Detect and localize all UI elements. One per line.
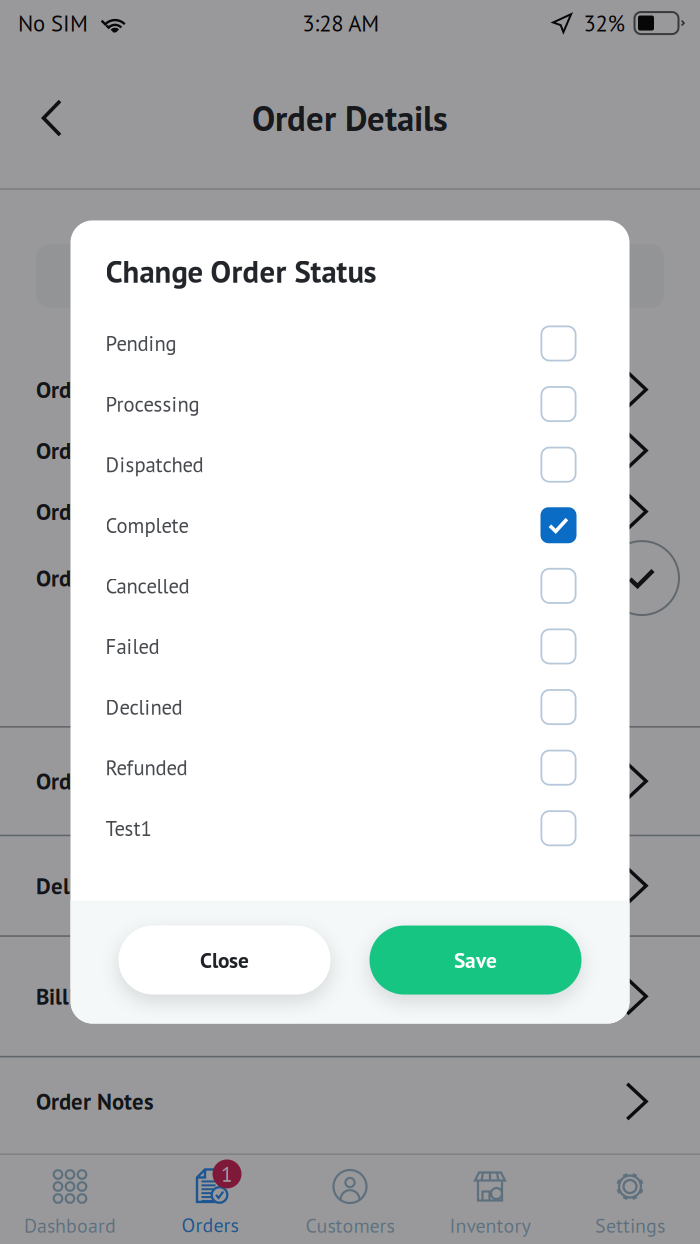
staticText: Dispatched [105, 451, 203, 478]
staticText: 32% [583, 8, 625, 38]
button[interactable]: Refunded [70, 737, 629, 798]
staticText: Settings [595, 1212, 665, 1238]
button[interactable]: Declined [70, 677, 629, 737]
button[interactable]: Order Date [0, 420, 700, 481]
staticText: Close [200, 946, 249, 974]
button[interactable]: Dispatched [70, 434, 629, 495]
staticText: Test1 [105, 815, 151, 842]
button[interactable]: Complete [70, 495, 629, 555]
staticText: Declined [105, 694, 182, 720]
button[interactable]: Order Notes [0, 1057, 700, 1145]
button[interactable]: Back [21, 86, 83, 150]
staticText: Order Items [36, 766, 151, 796]
button[interactable]: Delivery Address [0, 836, 700, 935]
staticText: Change Order Status [105, 251, 376, 291]
button[interactable]: Failed [70, 616, 629, 677]
staticText: Order Status [36, 563, 158, 593]
button[interactable]: Billing Address [0, 937, 700, 1056]
button[interactable]: Order ID [0, 359, 700, 420]
staticText: Customers [305, 1212, 394, 1238]
staticText: Dashboard [24, 1212, 116, 1238]
staticText: Failed [105, 633, 159, 660]
staticText: Order Notes [36, 1087, 154, 1116]
button[interactable]: Processing [70, 374, 629, 434]
staticText: Order ID [36, 375, 118, 404]
staticText: Delivery Address [36, 871, 200, 900]
staticText: Order Date [36, 436, 143, 465]
button[interactable]: Test1 [70, 798, 629, 858]
button[interactable]: Save [369, 925, 581, 994]
button[interactable]: Dashboard [0, 1155, 140, 1244]
staticText: Orders [181, 1212, 238, 1238]
staticText: Billing Address [36, 982, 182, 1011]
staticText: Refunded [105, 754, 187, 781]
button[interactable]: Order Items [0, 728, 700, 835]
staticText: Processing [105, 391, 199, 417]
staticText: 3:28 AM [302, 8, 379, 38]
button[interactable]: Inventory [420, 1155, 560, 1244]
staticText: Cancelled [105, 572, 189, 599]
staticText: Order Total [36, 497, 144, 526]
staticText: Pending [105, 330, 176, 357]
button[interactable]: Settings [560, 1155, 700, 1244]
staticText: 1 [221, 1160, 233, 1188]
staticText: Order Details [252, 96, 448, 140]
button[interactable]: Pending [70, 313, 629, 374]
button[interactable]: Cancelled [70, 555, 629, 616]
staticText: No SIM [18, 8, 88, 38]
button[interactable]: Customers [280, 1155, 420, 1244]
staticText: Complete [105, 512, 188, 539]
button[interactable]: Close [118, 925, 330, 994]
button[interactable]: Order Total [0, 481, 700, 542]
staticText: Inventory [449, 1212, 530, 1238]
button[interactable]: 1 [140, 1155, 280, 1244]
staticText: Save [454, 946, 497, 974]
